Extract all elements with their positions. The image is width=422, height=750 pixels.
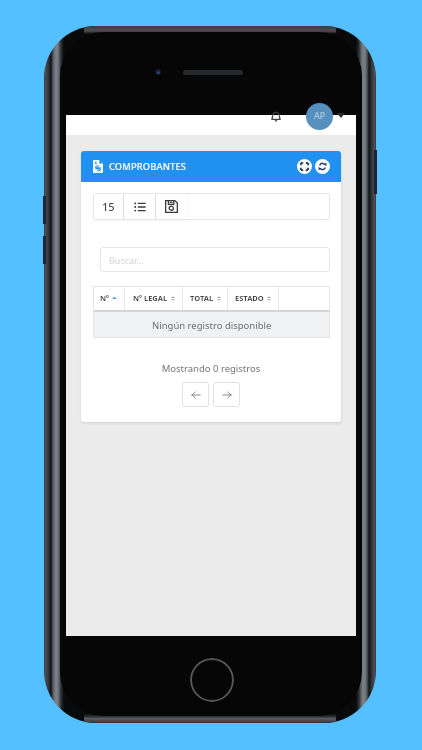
staticText: Nº LEGAL (133, 293, 168, 303)
button[interactable]: Next page (213, 382, 240, 407)
staticText: Mostrando 0 registros (81, 362, 341, 375)
button[interactable]: TOTAL (183, 286, 227, 310)
button[interactable]: Nº (93, 286, 124, 310)
button[interactable]: ESTADO (228, 286, 278, 310)
button[interactable]: 15 (93, 193, 123, 220)
staticText: TOTAL (190, 293, 214, 303)
button[interactable] (124, 193, 155, 220)
staticText: AP (314, 109, 326, 121)
staticText: COMPROBANTES (109, 160, 187, 173)
button[interactable] (156, 193, 187, 220)
staticText: Nº (100, 293, 109, 303)
staticText: Buscar... (109, 254, 144, 266)
staticText: Ningún registro disponible (152, 319, 272, 332)
button[interactable]: Buscar... (100, 247, 330, 272)
button[interactable]: Account (306, 103, 333, 130)
button[interactable]: Notifications (269, 109, 283, 123)
button[interactable]: Previous page (182, 382, 209, 407)
button[interactable]: Expand (297, 159, 312, 174)
staticText: ESTADO (235, 293, 264, 303)
staticText: 15 (102, 199, 115, 214)
button[interactable]: Refresh (315, 159, 330, 174)
button[interactable]: Nº LEGAL (125, 286, 182, 310)
